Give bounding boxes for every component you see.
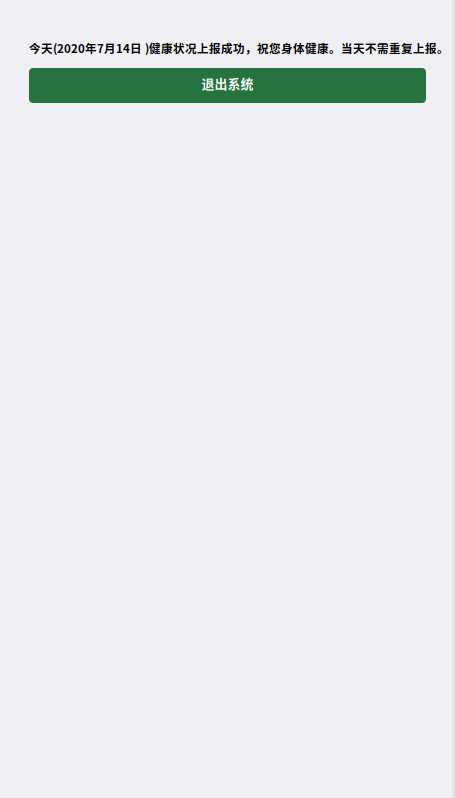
staticText: 今天(2020年7月14日 )健康状况上报成功，祝您身体健康。当天不需重复上报。 (29, 40, 449, 56)
button[interactable]: 退出系统 (29, 68, 426, 103)
staticText: 退出系统 (201, 74, 253, 92)
